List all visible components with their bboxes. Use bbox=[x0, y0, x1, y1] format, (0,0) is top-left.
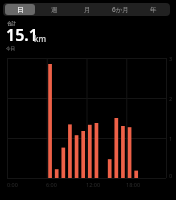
staticText: 15.1 bbox=[6, 24, 38, 46]
staticText: 年 bbox=[150, 6, 157, 14]
staticText: 18:00 bbox=[126, 181, 141, 188]
staticText: km bbox=[34, 33, 47, 44]
staticText: 1 bbox=[169, 135, 173, 142]
button[interactable]: 日 bbox=[5, 4, 35, 15]
staticText: 6:00 bbox=[46, 181, 57, 188]
button[interactable]: 月 bbox=[73, 4, 102, 15]
button[interactable]: 6か月 bbox=[106, 4, 135, 15]
button[interactable]: 週 bbox=[39, 4, 69, 15]
staticText: 今日 bbox=[6, 46, 16, 52]
staticText: 合計 bbox=[7, 21, 17, 27]
staticText: 0:00 bbox=[7, 181, 18, 188]
staticText: 6か月 bbox=[112, 5, 129, 14]
staticText: 0 bbox=[169, 172, 173, 179]
staticText: 2 bbox=[169, 95, 173, 102]
staticText: 3 bbox=[169, 55, 173, 62]
staticText: 12:00 bbox=[86, 181, 101, 188]
staticText: 月 bbox=[84, 6, 91, 14]
staticText: 日 bbox=[17, 6, 24, 14]
staticText: 週 bbox=[51, 6, 58, 14]
button[interactable]: 年 bbox=[139, 4, 168, 15]
